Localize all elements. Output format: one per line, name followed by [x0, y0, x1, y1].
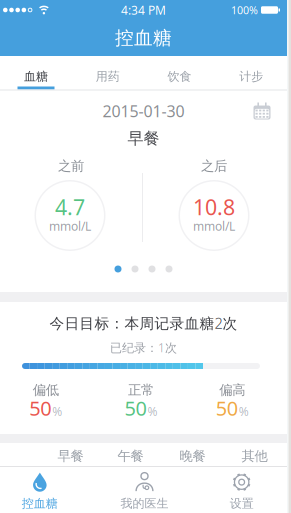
- staticText: 2015-01-30: [102, 100, 184, 122]
- staticText: 偏低: [33, 382, 59, 398]
- staticText: 其他: [241, 448, 267, 464]
- staticText: 10.8: [193, 193, 235, 221]
- button[interactable]: 选择日期: [252, 100, 272, 120]
- staticText: mmol/L: [193, 218, 235, 234]
- staticText: 50: [124, 395, 146, 421]
- staticText: %: [239, 403, 249, 419]
- button[interactable]: 其他: [226, 444, 282, 467]
- staticText: 今日目标：本周记录血糖2次: [49, 313, 237, 333]
- staticText: 已纪录：1次: [110, 339, 177, 355]
- staticText: 计步: [239, 69, 263, 84]
- staticText: 50: [29, 395, 51, 421]
- staticText: mmol/L: [49, 218, 91, 234]
- staticText: 偏高: [219, 382, 245, 398]
- button[interactable]: 血糖: [0, 60, 72, 93]
- button[interactable]: 早餐: [42, 444, 98, 467]
- staticText: 正常: [128, 382, 154, 398]
- staticText: %: [147, 403, 157, 419]
- staticText: 我的医生: [120, 496, 168, 511]
- button[interactable]: 饮食: [143, 60, 215, 93]
- button[interactable]: 控血糖: [0, 467, 96, 513]
- button[interactable]: 设置: [191, 467, 287, 513]
- staticText: 设置: [230, 496, 254, 511]
- staticText: %: [52, 403, 62, 419]
- staticText: 4.7: [55, 193, 85, 221]
- staticText: 血糖: [24, 69, 48, 84]
- button[interactable]: 计步: [215, 60, 287, 93]
- staticText: 早餐: [57, 448, 83, 464]
- staticText: 饮食: [167, 69, 191, 84]
- staticText: 4:34 PM: [121, 2, 166, 18]
- staticText: 之前: [58, 158, 84, 174]
- button[interactable]: 晚餐: [164, 444, 220, 467]
- staticText: 100%: [231, 3, 258, 17]
- staticText: 50: [216, 395, 238, 421]
- button[interactable]: 我的医生: [96, 467, 191, 513]
- staticText: 之后: [201, 158, 227, 174]
- button[interactable]: 午餐: [102, 444, 158, 467]
- staticText: 控血糖: [22, 496, 58, 511]
- staticText: 用药: [96, 69, 120, 84]
- staticText: 早餐: [127, 129, 159, 148]
- staticText: 晚餐: [179, 448, 205, 464]
- staticText: 午餐: [117, 448, 143, 464]
- button[interactable]: 用药: [72, 60, 144, 93]
- staticText: 控血糖: [115, 26, 172, 49]
